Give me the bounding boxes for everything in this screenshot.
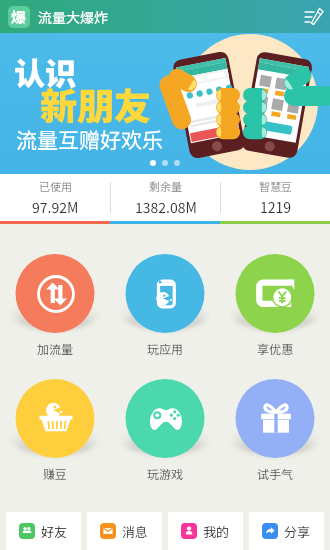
button[interactable]: 剩余量 bbox=[111, 174, 220, 221]
button[interactable]: 智慧豆 bbox=[221, 174, 330, 221]
staticText: 流量互赠好欢乐 bbox=[16, 124, 163, 154]
staticText: 97.92M bbox=[32, 197, 79, 217]
staticText: 赚豆 bbox=[43, 465, 68, 482]
staticText: 爆 bbox=[11, 6, 27, 28]
staticText: 已使用 bbox=[39, 178, 72, 194]
button[interactable]: Compose bbox=[297, 0, 330, 33]
button[interactable]: 玩游戏 bbox=[110, 379, 220, 484]
button[interactable]: 好友 bbox=[6, 512, 81, 550]
staticText: 剩余量 bbox=[149, 178, 182, 194]
staticText: 新朋友 bbox=[40, 77, 151, 131]
staticText: 认识 bbox=[14, 49, 76, 94]
button[interactable]: 我的 bbox=[168, 512, 243, 550]
staticText: 智慧豆 bbox=[259, 178, 292, 194]
button[interactable]: 消息 bbox=[87, 512, 162, 550]
button[interactable]: 分享 bbox=[249, 512, 324, 550]
staticText: 玩游戏 bbox=[147, 465, 184, 482]
button[interactable]: 试手气 bbox=[220, 379, 330, 484]
button[interactable]: 享优惠 bbox=[220, 254, 330, 359]
staticText: 分享 bbox=[284, 522, 311, 541]
staticText: 玩应用 bbox=[147, 340, 184, 357]
staticText: 1382.08M bbox=[135, 197, 197, 217]
button[interactable]: 已使用 bbox=[0, 174, 110, 221]
staticText: 好友 bbox=[41, 522, 68, 541]
staticText: 消息 bbox=[122, 522, 149, 541]
staticText: 加流量 bbox=[37, 340, 74, 357]
staticText: 我的 bbox=[203, 522, 230, 541]
staticText: 流量大爆炸 bbox=[38, 7, 108, 27]
staticText: 1219 bbox=[260, 197, 292, 217]
button[interactable]: 赚豆 bbox=[0, 379, 110, 484]
button[interactable]: 玩应用 bbox=[110, 254, 220, 359]
staticText: 享优惠 bbox=[257, 340, 294, 357]
button[interactable]: 加流量 bbox=[0, 254, 110, 359]
staticText: 试手气 bbox=[257, 465, 294, 482]
